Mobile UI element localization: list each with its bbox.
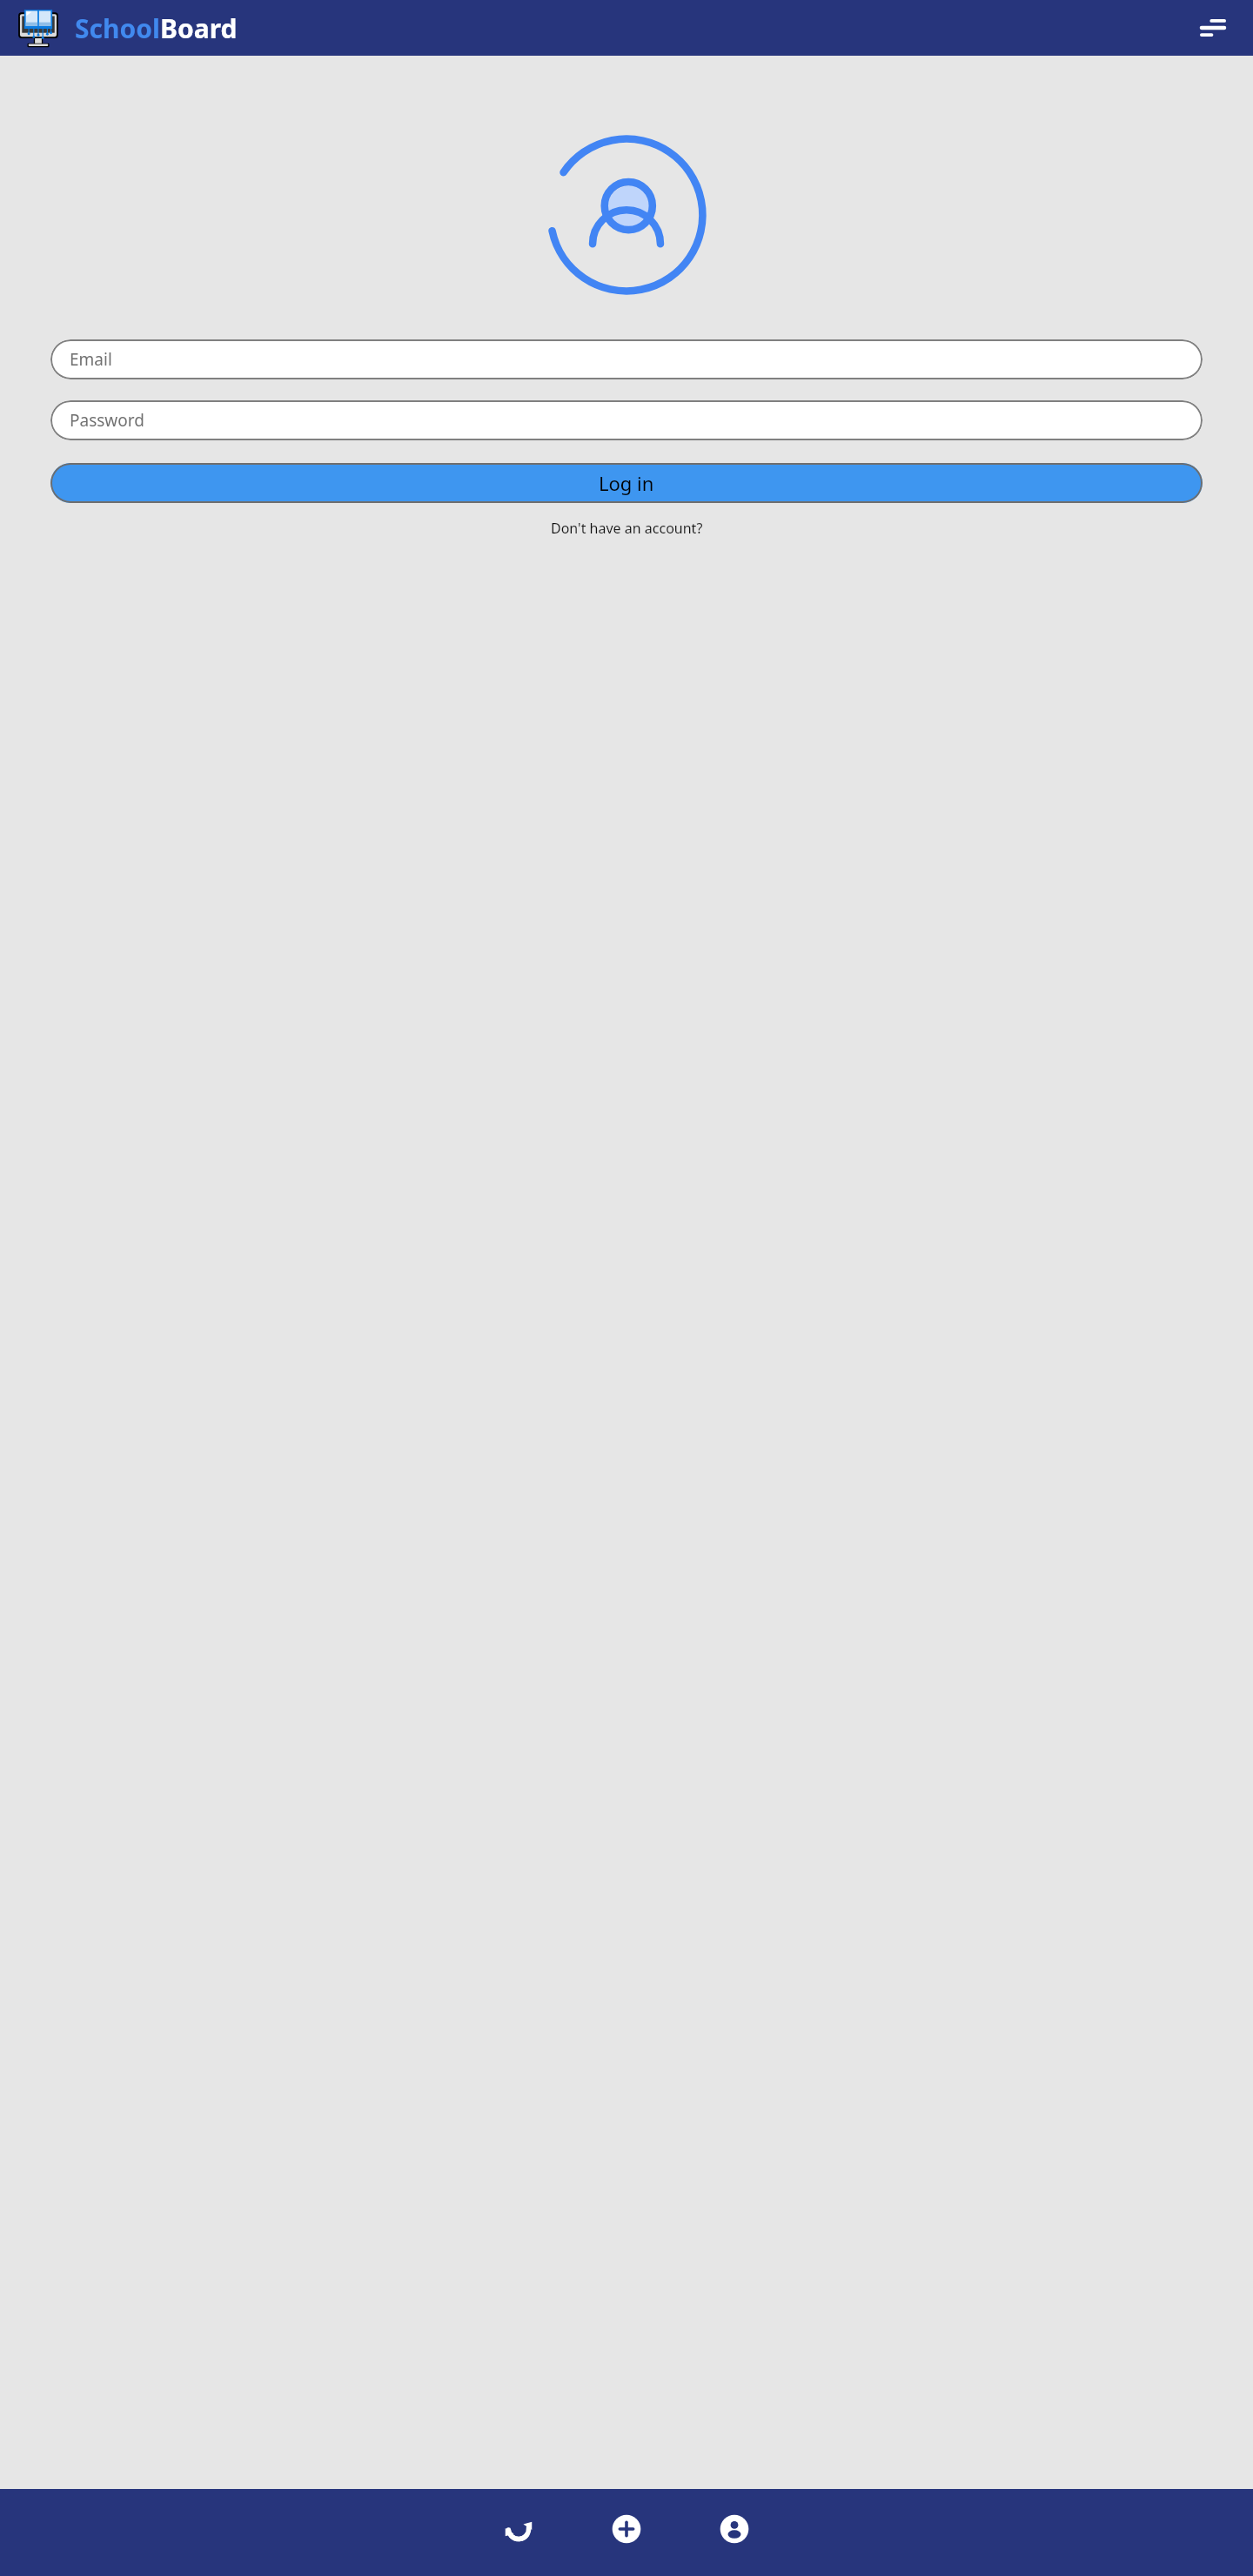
button[interactable]: Add xyxy=(602,2505,651,2553)
staticText: Password xyxy=(70,409,144,432)
staticText: Log in xyxy=(599,470,654,496)
staticText: Board xyxy=(160,10,238,46)
button[interactable]: Don't have an account? xyxy=(544,515,710,541)
button[interactable]: Password xyxy=(50,400,1203,440)
button[interactable]: Profile xyxy=(710,2505,759,2553)
button[interactable]: Sync xyxy=(494,2505,543,2553)
staticText: Email xyxy=(70,348,112,371)
button[interactable]: Log in xyxy=(50,463,1203,503)
button[interactable]: Email xyxy=(50,339,1203,379)
staticText: School xyxy=(75,10,160,46)
button[interactable]: Menu xyxy=(1192,7,1234,49)
